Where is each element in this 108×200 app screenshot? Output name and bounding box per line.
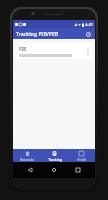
button[interactable]: PIB	[16, 43, 92, 59]
staticText: PIB	[19, 46, 27, 52]
button[interactable]: Beranda	[13, 149, 41, 162]
button[interactable]: Home	[47, 163, 61, 177]
button[interactable]: Recent apps	[71, 163, 85, 177]
staticText: 4:41	[85, 22, 93, 27]
button[interactable]: More options	[85, 44, 91, 58]
button[interactable]: Back	[23, 163, 37, 177]
button[interactable]: Account	[84, 30, 92, 38]
staticText: Profil	[77, 157, 86, 162]
button[interactable]: Profil	[68, 149, 95, 162]
staticText: Tracking	[48, 157, 62, 162]
button[interactable]: Tracking	[41, 149, 68, 162]
staticText: Beranda	[20, 157, 34, 162]
staticText: Tracking PIB/PEB	[16, 30, 84, 37]
